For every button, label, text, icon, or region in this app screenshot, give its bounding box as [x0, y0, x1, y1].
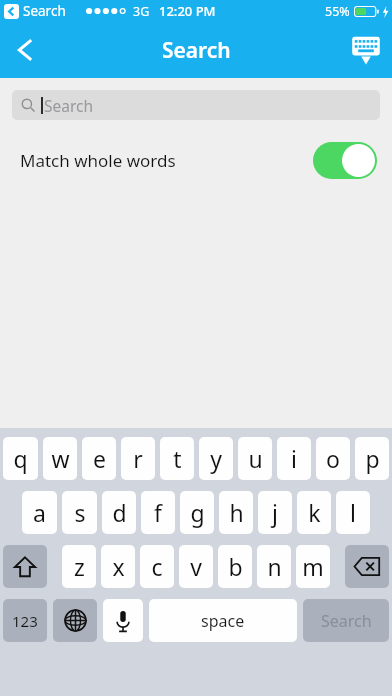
staticText: x [112, 551, 125, 582]
button[interactable]: p [355, 437, 389, 480]
staticText: q [13, 443, 28, 474]
button[interactable]: a [22, 491, 57, 534]
button[interactable]: Search [12, 90, 380, 120]
staticText: z [74, 551, 85, 582]
button[interactable]: 123 [3, 599, 47, 642]
staticText: 55% [325, 3, 350, 20]
button[interactable]: Search [303, 599, 389, 642]
button[interactable]: w [43, 437, 77, 480]
button[interactable]: Change keyboard language [53, 599, 97, 642]
button[interactable]: Match whole words [0, 136, 392, 184]
staticText: t [173, 443, 182, 474]
button[interactable]: space [149, 599, 297, 642]
button[interactable]: x [101, 545, 135, 588]
button[interactable]: n [257, 545, 291, 588]
staticText: Search [44, 95, 94, 116]
button[interactable]: e [82, 437, 116, 480]
staticText: y [210, 443, 222, 474]
button[interactable]: Shift [3, 545, 47, 588]
staticText: b [228, 551, 243, 582]
staticText: i [291, 443, 297, 474]
button[interactable]: y [199, 437, 233, 480]
staticText: w [51, 443, 70, 474]
staticText: s [74, 497, 86, 528]
staticText: c [151, 551, 163, 582]
staticText: 123 [12, 611, 38, 631]
button[interactable]: o [316, 437, 350, 480]
button[interactable]: q [3, 437, 38, 480]
button[interactable]: Dictate [103, 599, 143, 642]
staticText: j [272, 497, 278, 528]
staticText: Search [23, 2, 66, 20]
staticText: Search [162, 36, 231, 65]
button[interactable]: Match whole words toggle, on [313, 142, 377, 179]
staticText: k [308, 497, 321, 528]
staticText: a [33, 497, 46, 528]
button[interactable]: b [218, 545, 252, 588]
staticText: u [248, 443, 263, 474]
staticText: 3G [133, 3, 150, 20]
button[interactable]: v [179, 545, 213, 588]
button[interactable]: j [258, 491, 292, 534]
button[interactable]: i [277, 437, 311, 480]
button[interactable]: z [62, 545, 96, 588]
button[interactable]: u [238, 437, 272, 480]
button[interactable]: m [296, 545, 330, 588]
button[interactable]: Backspace [345, 545, 389, 588]
button[interactable]: l [336, 491, 370, 534]
staticText: o [326, 443, 340, 474]
staticText: g [190, 497, 205, 528]
staticText: n [267, 551, 282, 582]
button[interactable]: h [219, 491, 253, 534]
button[interactable]: c [140, 545, 174, 588]
staticText: d [112, 497, 127, 528]
button[interactable]: Hide keyboard [340, 24, 392, 76]
button[interactable]: f [141, 491, 175, 534]
button[interactable]: t [160, 437, 194, 480]
staticText: 12:20 PM [159, 2, 216, 20]
button[interactable]: r [121, 437, 155, 480]
staticText: e [93, 443, 106, 474]
staticText: h [229, 497, 244, 528]
staticText: Search [321, 610, 372, 632]
staticText: space [201, 610, 245, 632]
staticText: l [350, 497, 356, 528]
staticText: p [365, 443, 380, 474]
button[interactable]: s [62, 491, 97, 534]
staticText: m [302, 551, 324, 582]
staticText: r [133, 443, 143, 474]
staticText: f [154, 497, 162, 528]
staticText: Match whole words [20, 149, 176, 172]
staticText: v [190, 551, 202, 582]
button[interactable]: Back [0, 24, 52, 76]
button[interactable]: g [180, 491, 214, 534]
button[interactable]: k [297, 491, 331, 534]
button[interactable]: d [102, 491, 136, 534]
